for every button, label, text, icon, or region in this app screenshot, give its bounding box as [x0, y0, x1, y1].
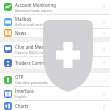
staticText: Open to MQL5.community [15, 50, 58, 55]
staticText: Advanced trade reports [15, 8, 53, 13]
staticText: OTP [15, 74, 24, 80]
button[interactable]: OTP [0, 73, 110, 86]
button[interactable]: News [0, 29, 110, 37]
button[interactable]: Charts [0, 101, 110, 110]
staticText: Charts [15, 103, 29, 109]
button[interactable]: Chat and Messages [0, 42, 110, 56]
staticText: One-time passwords [15, 80, 48, 85]
button[interactable]: Interface [0, 87, 110, 100]
staticText: Mailbox [15, 16, 32, 22]
staticText: News [15, 30, 27, 36]
button[interactable]: Account Monitoring [0, 0, 110, 14]
staticText: Interface [15, 88, 34, 94]
staticText: Account Monitoring [15, 2, 56, 8]
staticText: Built-in mail service [15, 22, 46, 27]
button[interactable]: Mailbox [0, 15, 110, 28]
staticText: Chat and Messages [15, 44, 56, 50]
staticText: Traders Community [15, 60, 56, 66]
button[interactable]: Traders Community [0, 57, 110, 68]
staticText: English [15, 94, 27, 99]
